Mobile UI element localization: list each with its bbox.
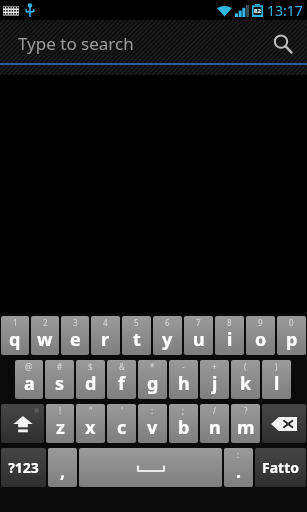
staticText: x (85, 415, 96, 440)
button[interactable]: 3 (61, 316, 89, 355)
staticText: 2 (43, 317, 48, 328)
button[interactable]: 9 (246, 316, 275, 355)
button[interactable]: ) (262, 360, 291, 399)
button[interactable]: @ (15, 360, 43, 399)
staticText: f (118, 371, 125, 396)
staticText: j (212, 371, 218, 396)
staticText: ! (59, 405, 62, 416)
staticText: e (70, 327, 81, 352)
staticText: s (55, 371, 65, 396)
staticText: Type to search (18, 32, 134, 55)
button[interactable]: ' (107, 404, 136, 443)
staticText: ) (275, 361, 278, 372)
staticText: 7 (196, 317, 201, 328)
button[interactable]: ( (231, 360, 260, 399)
staticText: a (24, 371, 35, 396)
staticText: 0 (289, 317, 294, 328)
staticText: 82 (254, 7, 261, 15)
staticText: 13:17 (267, 1, 303, 20)
staticText: w (37, 327, 53, 352)
button[interactable]: Backspace (262, 404, 306, 443)
button[interactable]: + (200, 360, 229, 399)
button[interactable]: 8 (215, 316, 244, 355)
staticText: . (236, 459, 242, 484)
button[interactable]: : (224, 448, 253, 487)
staticText: ?123 (8, 458, 39, 477)
staticText: 6 (165, 317, 170, 328)
button[interactable]: ; (169, 404, 198, 443)
button[interactable]: ! (46, 404, 74, 443)
staticText: c (117, 415, 127, 440)
staticText: l (274, 371, 280, 396)
button[interactable]: ? (231, 404, 260, 443)
staticText: y (162, 327, 173, 352)
button[interactable]: - (169, 360, 198, 399)
staticText: 9 (258, 317, 263, 328)
button[interactable]: Fatto (255, 448, 306, 487)
staticText: r (101, 327, 110, 352)
button[interactable]: Space (79, 448, 222, 487)
staticText: z (56, 415, 65, 440)
staticText: ? (244, 405, 248, 416)
button[interactable]: $ (76, 360, 105, 399)
staticText: o (255, 327, 267, 352)
staticText: @ (25, 361, 33, 372)
staticText: * (150, 361, 155, 372)
button[interactable]: # (45, 360, 74, 399)
button[interactable]: 2 (31, 316, 59, 355)
staticText: 8 (227, 317, 232, 328)
button[interactable]: 0 (277, 316, 306, 355)
button[interactable]: 1 (1, 316, 29, 355)
staticText: d (85, 371, 97, 396)
staticText: u (193, 327, 205, 352)
staticText: " (89, 405, 93, 416)
staticText: 1 (13, 317, 18, 328)
staticText: + (212, 361, 217, 372)
staticText: , (60, 459, 66, 484)
button[interactable]: * (138, 360, 167, 399)
button[interactable]: ?123 (1, 448, 46, 487)
staticText: n (209, 415, 221, 440)
staticText: q (9, 327, 21, 352)
button[interactable]: 6 (153, 316, 182, 355)
staticText: 4 (103, 317, 108, 328)
button[interactable]: 7 (184, 316, 213, 355)
button[interactable]: 4 (91, 316, 120, 355)
button[interactable]: " (76, 404, 105, 443)
button[interactable]: & (107, 360, 136, 399)
staticText: t (133, 327, 141, 352)
staticText: : (237, 449, 240, 460)
button[interactable]: 5 (122, 316, 151, 355)
button[interactable]: : (138, 404, 167, 443)
button[interactable]: / (200, 404, 229, 443)
button[interactable]: Type to search (0, 20, 307, 75)
staticText: & (119, 361, 125, 372)
staticText: ' (121, 405, 123, 416)
staticText: m (237, 415, 255, 440)
staticText: # (57, 361, 63, 372)
staticText: p (286, 327, 298, 352)
staticText: i (227, 327, 233, 352)
staticText: v (147, 415, 158, 440)
staticText: k (240, 371, 252, 396)
staticText: 5 (134, 317, 139, 328)
staticText: Fatto (262, 458, 299, 477)
button[interactable]: Shift (1, 404, 44, 443)
staticText: / (213, 405, 216, 416)
staticText: 3 (73, 317, 78, 328)
staticText: h (178, 371, 190, 396)
button[interactable]: , (48, 448, 77, 487)
staticText: ( (244, 361, 247, 372)
staticText: ; (182, 405, 185, 416)
button[interactable]: Search (267, 28, 299, 60)
staticText: : (151, 405, 154, 416)
staticText: $ (88, 361, 93, 372)
staticText: g (147, 371, 159, 396)
staticText: - (182, 361, 185, 372)
staticText: b (178, 415, 190, 440)
